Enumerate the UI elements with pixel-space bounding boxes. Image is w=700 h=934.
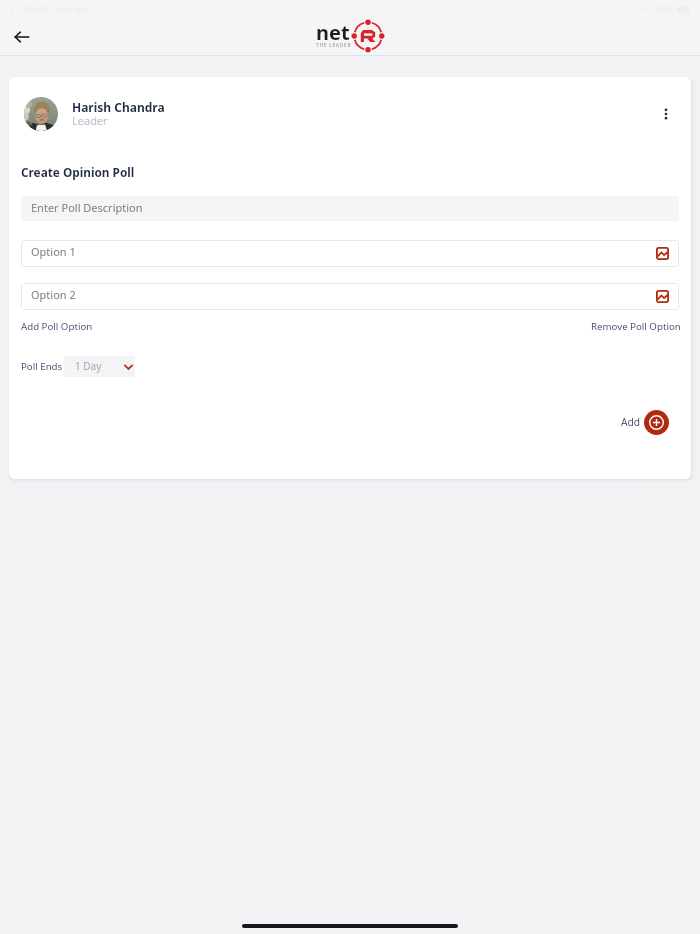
button[interactable]: Add Poll Option xyxy=(21,320,93,333)
staticText: THE LEADER xyxy=(316,42,352,49)
button[interactable]: Option 2 xyxy=(21,283,679,310)
button[interactable]: Add image xyxy=(656,247,669,260)
staticText: Enter Poll Description xyxy=(31,200,143,215)
staticText: Leader xyxy=(72,113,108,128)
staticText: net xyxy=(316,19,350,46)
button[interactable]: More options xyxy=(653,101,679,127)
button[interactable]: Option 1 xyxy=(21,240,679,267)
button[interactable]: Add poll xyxy=(644,410,669,435)
staticText: Create Opinion Poll xyxy=(21,164,135,180)
staticText: Option 2 xyxy=(31,287,656,302)
staticText: Poll Ends xyxy=(21,360,63,373)
staticText: 1 Day xyxy=(75,359,124,373)
staticText: Option 1 xyxy=(31,244,656,259)
button[interactable]: Remove Poll Option xyxy=(591,320,681,333)
button[interactable]: Back xyxy=(7,22,37,52)
staticText: Add xyxy=(621,415,641,429)
button[interactable]: 1 Day xyxy=(64,356,135,377)
staticText: Harish Chandra xyxy=(72,99,165,115)
button[interactable]: Add image xyxy=(656,290,669,303)
button[interactable]: Enter Poll Description xyxy=(21,196,679,221)
